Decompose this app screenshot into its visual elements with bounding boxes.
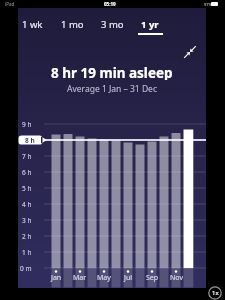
staticText: 1 h (22, 248, 32, 257)
button[interactable]: 1x (208, 286, 222, 300)
button[interactable]: 1 wk (15, 16, 49, 32)
staticText: 5 h (22, 184, 32, 193)
staticText: 1 yr (141, 18, 159, 31)
staticText: Sep (146, 273, 159, 283)
staticText: 4 h (22, 200, 32, 209)
staticText: iPad (5, 1, 15, 7)
staticText: 9 h (22, 120, 32, 129)
staticText: 97% (204, 2, 212, 7)
staticText: 1x (212, 289, 219, 297)
staticText: Mar (73, 273, 87, 283)
staticText: May (97, 273, 111, 283)
button[interactable]: 1 yr (133, 16, 167, 32)
staticText: 0 m (20, 264, 32, 273)
staticText: 2 h (22, 232, 32, 241)
staticText: 3 h (22, 216, 32, 225)
staticText: 3 mo (101, 18, 124, 31)
staticText: 05:19 (104, 1, 116, 7)
staticText: Nov (170, 273, 183, 283)
staticText: 1 mo (61, 18, 84, 31)
button[interactable] (183, 45, 197, 59)
button[interactable]: 1 mo (55, 16, 89, 32)
staticText: 8 h (25, 136, 35, 145)
button[interactable]: 3 mo (95, 16, 129, 32)
staticText: 8 hr 19 min asleep (51, 64, 173, 80)
staticText: 7 h (22, 152, 32, 161)
staticText: 1 wk (22, 18, 43, 31)
staticText: 6 h (22, 168, 32, 177)
staticText: Average 1 Jan – 31 Dec (67, 83, 157, 95)
staticText: Jan (51, 273, 62, 283)
staticText: Jul (124, 273, 133, 283)
